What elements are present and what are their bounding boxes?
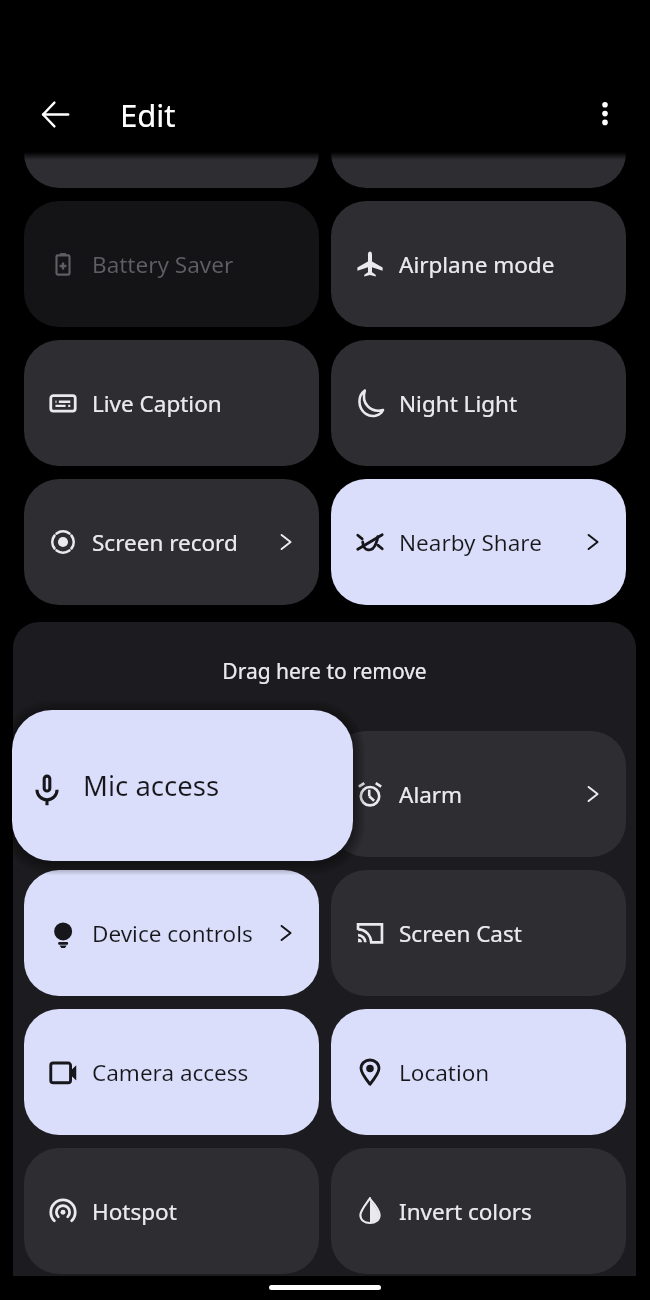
staticText: Nearby Share [399,527,542,558]
staticText: Mic access [83,767,220,804]
staticText: Location [399,1057,490,1088]
button[interactable]: Airplane mode [331,201,626,327]
staticText: Alarm [399,779,463,810]
button[interactable] [24,62,319,188]
button[interactable]: Mic access [12,710,353,861]
button[interactable]: Night Light [331,340,626,466]
button[interactable]: Screen record [24,479,319,605]
button[interactable]: More options [583,92,627,136]
staticText: Camera access [92,1057,249,1088]
button[interactable] [331,62,626,188]
button[interactable]: Camera access [24,1009,319,1135]
staticText: Airplane mode [399,249,555,280]
button[interactable]: Location [331,1009,626,1135]
button[interactable]: Invert colors [331,1148,626,1274]
staticText: Night Light [399,388,518,419]
button[interactable]: Battery Saver [24,201,319,327]
button[interactable]: Hotspot [24,1148,319,1274]
staticText: Edit [120,94,176,136]
button[interactable]: Screen Cast [331,870,626,996]
staticText: Battery Saver [92,249,234,280]
button[interactable]: Nearby Share [331,479,626,605]
button[interactable]: Device controls [24,870,319,996]
staticText: Screen Cast [399,918,522,949]
staticText: Drag here to remove [13,657,636,686]
staticText: Live Caption [92,388,222,419]
staticText: Device controls [92,918,253,949]
button[interactable]: Alarm [331,731,626,857]
staticText: Invert colors [399,1196,532,1227]
button[interactable]: Live Caption [24,340,319,466]
staticText: Screen record [92,527,238,558]
button[interactable]: Back [33,92,77,136]
staticText: Hotspot [92,1196,177,1227]
